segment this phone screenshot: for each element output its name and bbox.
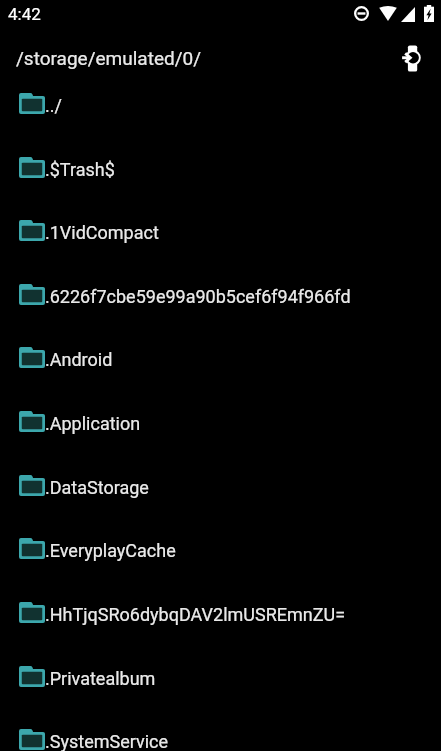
staticText: .DataStorage — [45, 477, 149, 498]
button[interactable]: .SystemService — [0, 707, 441, 751]
button[interactable]: ../ — [0, 71, 441, 135]
button[interactable]: .EveryplayCache — [0, 516, 441, 580]
staticText: .HhTjqSRo6dybqDAV2lmUSREmnZU= — [45, 604, 346, 625]
staticText: .SystemService — [45, 731, 169, 751]
button[interactable]: .Privatealbum — [0, 644, 441, 708]
staticText: ../ — [45, 95, 62, 116]
button[interactable]: Send to watch — [381, 36, 441, 82]
staticText: 4:42 — [8, 4, 41, 24]
staticText: .1VidCompact — [45, 222, 159, 243]
button[interactable]: .Android — [0, 325, 441, 389]
staticText: .Application — [45, 413, 141, 434]
button[interactable]: .6226f7cbe59e99a90b5cef6f94f966fd — [0, 262, 441, 326]
button[interactable]: .DataStorage — [0, 453, 441, 517]
staticText: .Android — [45, 349, 113, 370]
button[interactable]: .Application — [0, 389, 441, 453]
button[interactable]: .HhTjqSRo6dybqDAV2lmUSREmnZU= — [0, 580, 441, 644]
button[interactable]: .1VidCompact — [0, 198, 441, 262]
button[interactable]: .$Trash$ — [0, 135, 441, 199]
staticText: .$Trash$ — [45, 159, 115, 180]
staticText: .EveryplayCache — [45, 540, 176, 561]
staticText: .6226f7cbe59e99a90b5cef6f94f966fd — [45, 286, 351, 307]
staticText: .Privatealbum — [45, 668, 156, 689]
staticText: /storage/emulated/0/ — [16, 47, 202, 69]
